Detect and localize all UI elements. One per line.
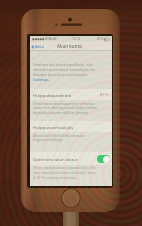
staticText: Optimoitu akun lataus [33, 156, 79, 162]
staticText: Huippukapasiteetti [33, 92, 72, 98]
staticText: akun ikääntymistä voidaan vähentää. Lata… [33, 171, 96, 175]
staticText: Tämä ilmaisee akun kapasiteetin suhteess… [33, 102, 94, 106]
staticText: Akun kunto [57, 43, 82, 49]
staticText: 12.14 [72, 37, 80, 41]
button[interactable]: Huippukapasiteetti [33, 89, 109, 100]
staticText: yli 80 %:n viivästyy tarvittaessa. [33, 176, 77, 180]
button[interactable]: Optimoitu akun lataus [33, 152, 110, 165]
staticText: Puhelimen akut kuluvat kemiallisesti, mi… [33, 63, 93, 67]
staticText: vähentää kapasiteettia ja suorituskykyä.… [33, 68, 96, 72]
button[interactable]: Akku [31, 44, 45, 49]
staticText: 87 % [100, 92, 109, 97]
staticText: Lisätietoja… [33, 78, 51, 82]
staticText: iPhone oppii päivittäisen latausrutiinis… [33, 166, 96, 170]
staticText: ●●●●● DNA [32, 37, 52, 41]
staticText: käyttöaika latausten välillä voi lyhenty… [33, 111, 89, 115]
staticText: Huippusuorituskyky [33, 124, 74, 130]
staticText: 20 % [97, 37, 103, 41]
staticText: Akku [35, 44, 45, 49]
staticText: huippusuorituskykyä. [33, 138, 64, 142]
button[interactable]: Huippusuorituskyky [33, 121, 109, 132]
staticText: uuteen. Kun akun kapasiteetti laskee, la… [33, 106, 98, 110]
staticText: Akkusi tukee tällä hetkellä normaalia [33, 134, 85, 138]
button[interactable]: Optimoitu akun lataus [97, 155, 110, 163]
button[interactable]: Lisätietoja… [33, 78, 51, 82]
staticText: lisää akun kunnosta ja suorituskyvystä. [33, 73, 88, 77]
button[interactable]: Home [61, 188, 81, 208]
